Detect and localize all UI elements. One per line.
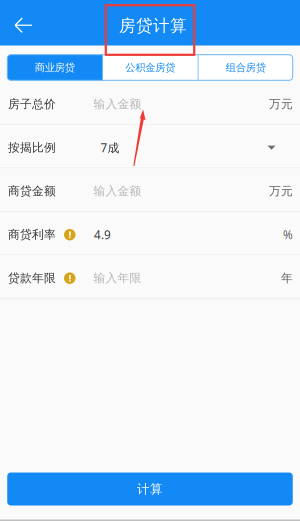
staticText: 房贷计算 bbox=[119, 15, 187, 36]
button[interactable]: 房子总价 bbox=[0, 81, 300, 125]
staticText: 房子总价 bbox=[8, 97, 56, 112]
staticText: 商业房贷 bbox=[35, 61, 75, 74]
staticText: 万元 bbox=[269, 184, 293, 199]
staticText: 年 bbox=[281, 271, 293, 286]
staticText: 输入金额 bbox=[93, 184, 141, 199]
button[interactable]: 商贷金额 bbox=[0, 168, 300, 212]
staticText: 按揭比例 bbox=[8, 140, 56, 155]
button[interactable]: 公积金房贷 bbox=[103, 55, 198, 80]
button[interactable]: 按揭比例 bbox=[0, 125, 300, 168]
button[interactable]: 商贷利率 bbox=[0, 212, 300, 255]
button[interactable]: 组合房贷 bbox=[199, 55, 293, 80]
staticText: 万元 bbox=[269, 97, 293, 112]
button[interactable]: 计算 bbox=[7, 472, 293, 505]
button[interactable]: 商业房贷 bbox=[7, 55, 102, 80]
staticText: 计算 bbox=[137, 481, 163, 497]
button[interactable]: 贷款年限 bbox=[0, 255, 300, 299]
staticText: 4.9 bbox=[94, 227, 111, 243]
staticText: % bbox=[283, 227, 293, 243]
staticText: 商贷利率 bbox=[8, 227, 56, 242]
staticText: 公积金房贷 bbox=[125, 61, 175, 74]
staticText: 商贷金额 bbox=[8, 184, 56, 199]
staticText: 输入年限 bbox=[93, 271, 141, 286]
staticText: 7成 bbox=[100, 140, 119, 156]
staticText: 组合房贷 bbox=[226, 61, 266, 74]
staticText: 贷款年限 bbox=[8, 271, 56, 286]
staticText: 输入金额 bbox=[93, 97, 141, 112]
button[interactable]: Back bbox=[0, 0, 44, 45]
